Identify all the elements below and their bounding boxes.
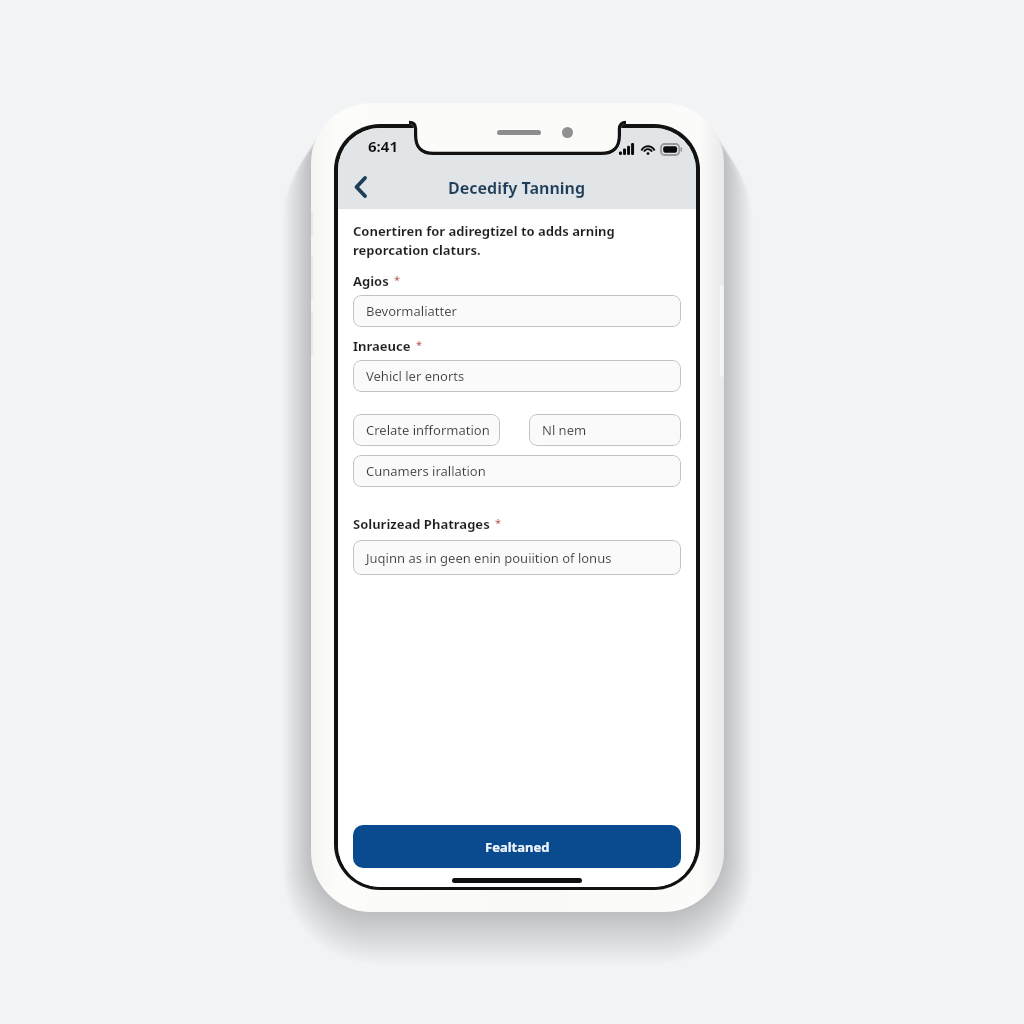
button[interactable]: Juqinn as in geen enin pouiition of lonu… [353, 540, 681, 575]
button[interactable]: Crelate infformation [353, 414, 500, 446]
staticText: Bevormaliatter [366, 302, 457, 320]
staticText: * [394, 272, 401, 287]
staticText: Inraeuce [353, 337, 411, 355]
button[interactable]: Fealtaned [353, 825, 681, 868]
staticText: Nl nem [542, 421, 587, 439]
staticText: Decedify Tanning [448, 177, 586, 199]
staticText: Conertiren for adiregtizel to adds arnin… [353, 222, 615, 258]
staticText: Cunamers irallation [366, 462, 486, 480]
staticText: 6:41 [368, 136, 398, 156]
button[interactable]: Cunamers irallation [353, 455, 681, 487]
staticText: Fealtaned [485, 838, 550, 856]
staticText: Solurizead Phatrages [353, 515, 490, 533]
staticText: Agios [353, 272, 389, 290]
staticText: Vehicl ler enorts [366, 367, 465, 385]
button[interactable]: Back [340, 167, 380, 207]
staticText: * [495, 515, 502, 530]
button[interactable]: Vehicl ler enorts [353, 360, 681, 392]
staticText: Juqinn as in geen enin pouiition of lonu… [366, 549, 612, 567]
button[interactable]: Bevormaliatter [353, 295, 681, 327]
staticText: * [416, 337, 423, 352]
staticText: Crelate infformation [366, 421, 490, 439]
button[interactable]: Nl nem [529, 414, 681, 446]
